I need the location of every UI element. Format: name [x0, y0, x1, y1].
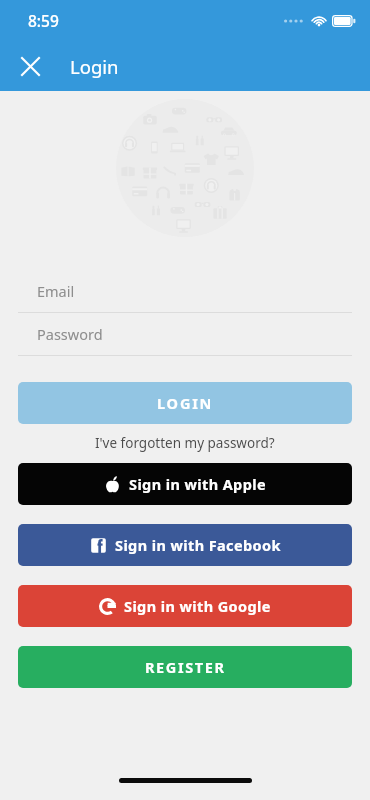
staticText: Sign in with Facebook	[115, 535, 281, 555]
staticText: Email	[37, 281, 75, 301]
button[interactable]: LOGIN	[18, 382, 352, 424]
staticText: Sign in with Google	[124, 596, 271, 616]
button[interactable]: Email	[18, 270, 352, 313]
button[interactable]: Sign in with Google	[18, 585, 352, 627]
staticText: Sign in with Apple	[129, 474, 266, 494]
button[interactable]: Close	[10, 46, 50, 86]
button[interactable]: Sign in with Facebook	[18, 524, 352, 566]
staticText: 8:59	[28, 10, 59, 31]
staticText: REGISTER	[145, 657, 226, 677]
staticText: I've forgotten my password?	[95, 434, 275, 452]
staticText: Password	[37, 324, 103, 344]
button[interactable]: Sign in with Apple	[18, 463, 352, 505]
button[interactable]: Password	[18, 313, 352, 356]
button[interactable]: I've forgotten my password?	[89, 432, 281, 454]
staticText: LOGIN	[157, 393, 214, 413]
staticText: Login	[70, 54, 119, 79]
button[interactable]: REGISTER	[18, 646, 352, 688]
